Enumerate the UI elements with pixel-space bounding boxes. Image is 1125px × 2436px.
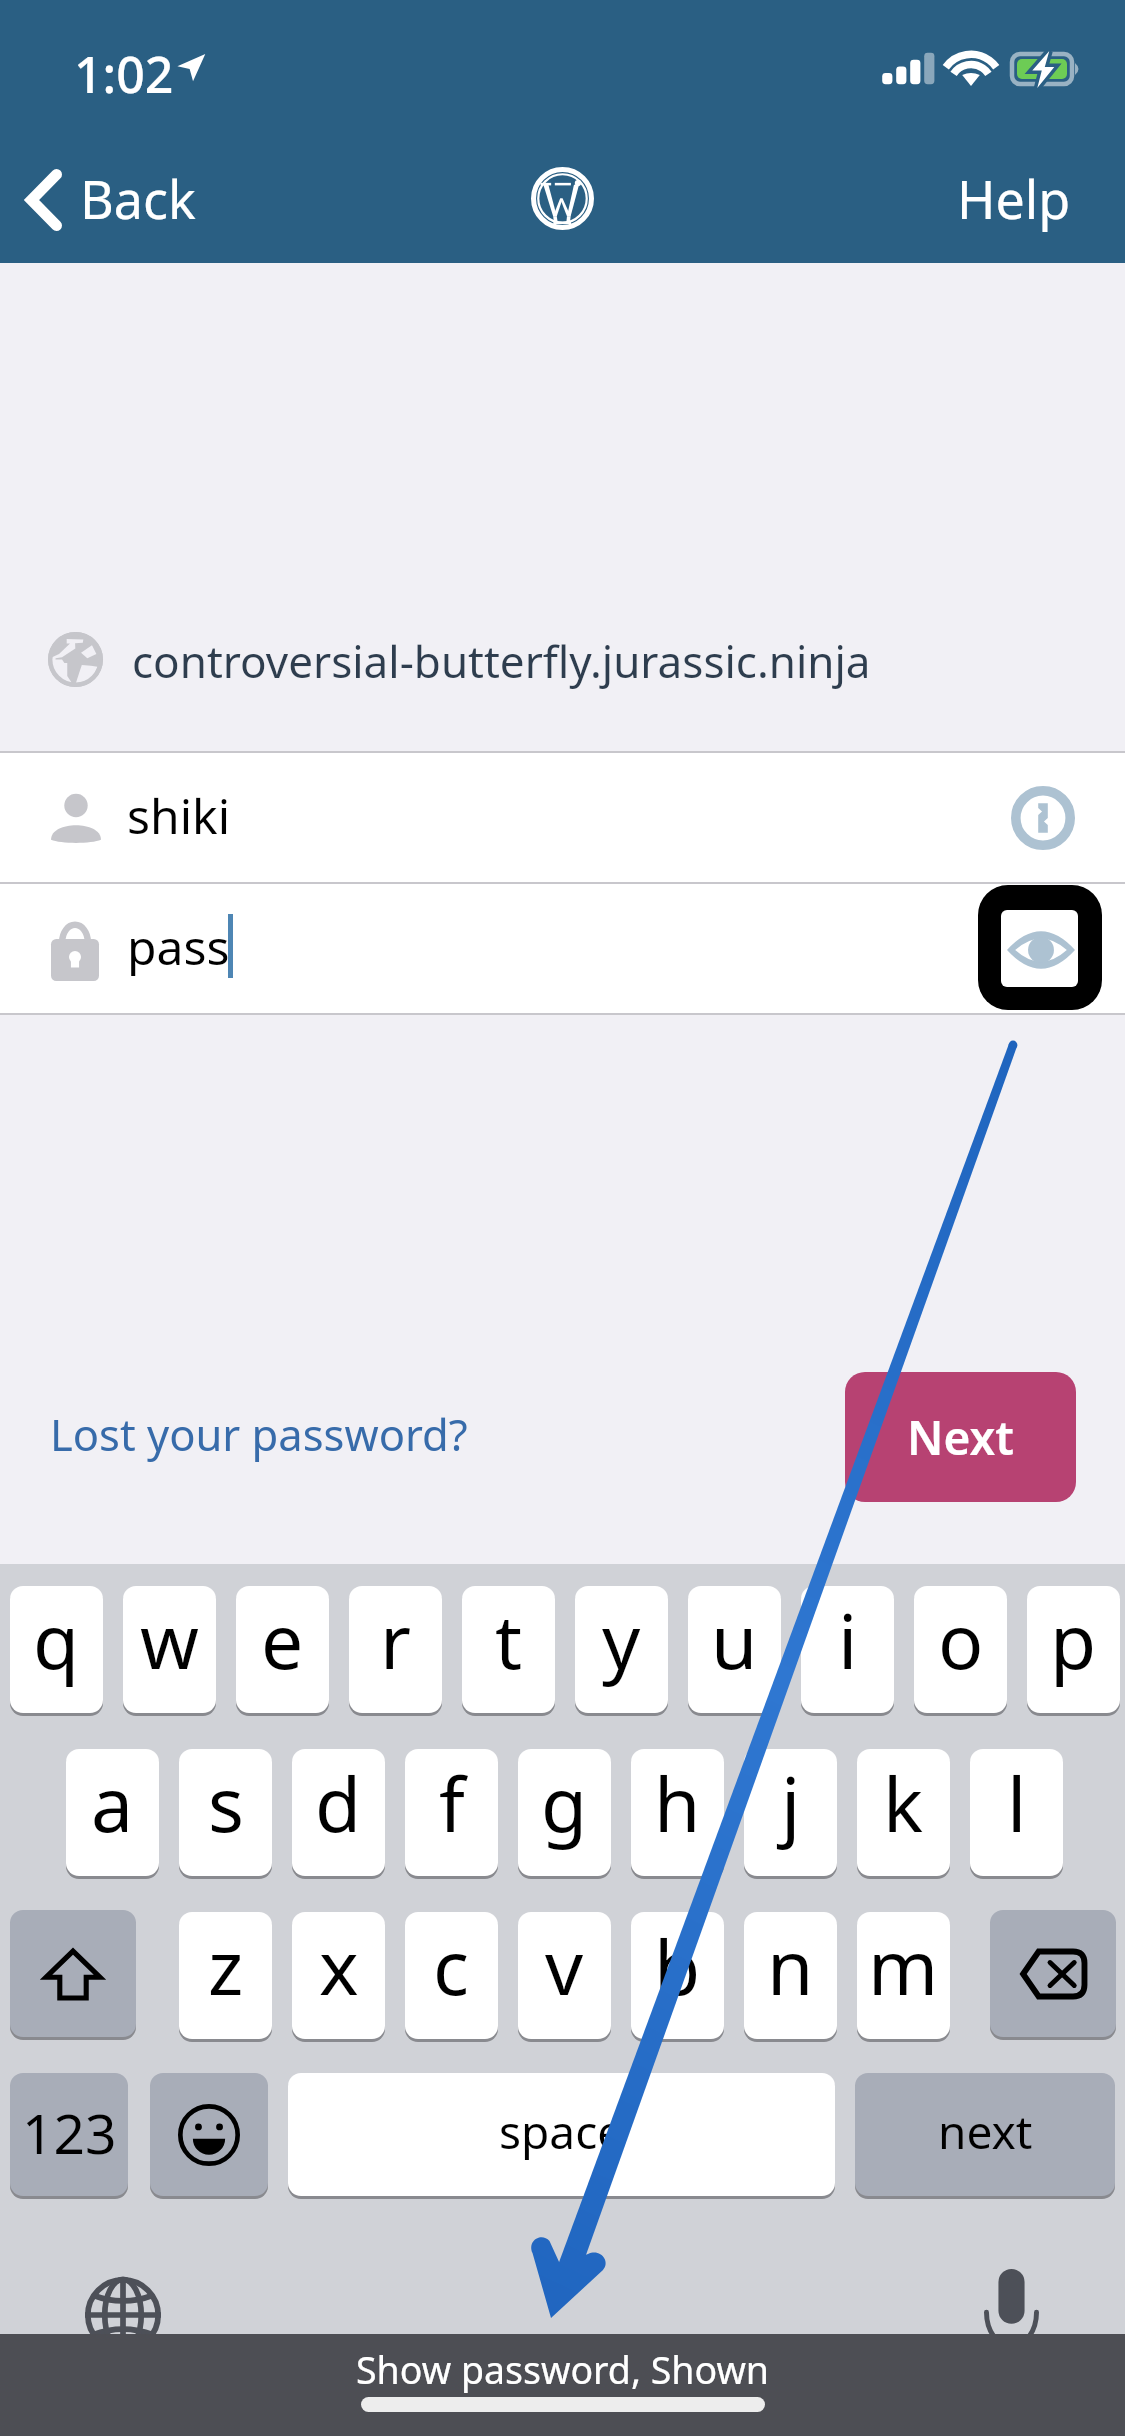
staticText: k [883, 1752, 924, 1854]
staticText: Lost your password? [50, 1404, 468, 1463]
button[interactable]: u [688, 1586, 781, 1713]
button[interactable]: l [970, 1749, 1063, 1876]
staticText: a [91, 1752, 134, 1854]
staticText: next [938, 2100, 1033, 2163]
button[interactable]: i [801, 1586, 894, 1713]
button[interactable]: p [1027, 1586, 1120, 1713]
button[interactable]: q [10, 1586, 103, 1713]
staticText: y [602, 1589, 641, 1691]
staticText: u [711, 1589, 758, 1691]
staticText: w [140, 1589, 199, 1691]
button[interactable]: z [179, 1912, 272, 2039]
button[interactable]: r [349, 1586, 442, 1713]
staticText: pass [127, 914, 230, 979]
staticText: q [33, 1589, 80, 1691]
button[interactable]: x [292, 1912, 385, 2039]
staticText: c [433, 1915, 470, 2017]
button[interactable]: t [462, 1586, 555, 1713]
staticText: d [315, 1752, 362, 1854]
staticText: h [654, 1752, 701, 1854]
staticText: l [1007, 1752, 1027, 1854]
button[interactable]: d [292, 1749, 385, 1876]
button[interactable]: 1Password [1000, 786, 1086, 850]
button[interactable]: c [405, 1912, 498, 2039]
button[interactable]: s [179, 1749, 272, 1876]
button[interactable]: Back [0, 148, 240, 252]
button[interactable]: Show password [978, 885, 1102, 1010]
staticText: controversial-butterfly.jurassic.ninja [132, 631, 871, 691]
button[interactable]: Switch keyboard [85, 2277, 161, 2353]
button[interactable]: j [744, 1749, 837, 1876]
button[interactable]: space [288, 2073, 835, 2196]
staticText: j [781, 1752, 801, 1854]
staticText: Back [80, 163, 196, 234]
button[interactable]: g [518, 1749, 611, 1876]
staticText: t [495, 1589, 523, 1691]
staticText: f [439, 1752, 465, 1854]
button[interactable]: n [744, 1912, 837, 2039]
button[interactable]: Help [920, 148, 1095, 252]
staticText: b [654, 1915, 701, 2017]
staticText: v [545, 1915, 584, 2017]
button[interactable]: Emoji [150, 2073, 268, 2196]
button[interactable]: pass [0, 884, 1125, 1013]
staticText: r [380, 1589, 411, 1691]
staticText: m [868, 1915, 939, 2017]
button[interactable]: Next [845, 1372, 1076, 1502]
button[interactable]: o [914, 1586, 1007, 1713]
button[interactable]: Lost your password? [50, 1404, 468, 1463]
staticText: s [208, 1752, 244, 1854]
button[interactable]: h [631, 1749, 724, 1876]
button[interactable]: next [855, 2073, 1115, 2196]
staticText: x [319, 1915, 359, 2017]
button[interactable]: Dictate [984, 2269, 1039, 2345]
button[interactable]: m [857, 1912, 950, 2039]
button[interactable]: 123 [10, 2073, 128, 2196]
staticText: g [541, 1752, 588, 1854]
button[interactable]: a [66, 1749, 159, 1876]
staticText: space [499, 2100, 624, 2163]
staticText: z [208, 1915, 244, 2017]
button[interactable]: f [405, 1749, 498, 1876]
button[interactable]: e [236, 1586, 329, 1713]
button[interactable]: k [857, 1749, 950, 1876]
staticText: Next [907, 1406, 1014, 1469]
button[interactable]: w [123, 1586, 216, 1713]
staticText: 123 [22, 2095, 117, 2170]
staticText: e [261, 1589, 304, 1691]
button[interactable]: y [575, 1586, 668, 1713]
staticText: Help [957, 163, 1071, 234]
button[interactable]: v [518, 1912, 611, 2039]
staticText: shiki [127, 783, 231, 848]
staticText: 1:02 [74, 40, 174, 108]
button[interactable]: b [631, 1912, 724, 2039]
staticText: o [938, 1589, 984, 1691]
button[interactable]: Backspace [990, 1910, 1116, 2037]
staticText: p [1050, 1589, 1097, 1691]
button[interactable]: shiki [0, 753, 1125, 882]
staticText: i [838, 1589, 858, 1691]
staticText: Show password, Shown [0, 2344, 1125, 2395]
staticText: n [767, 1915, 814, 2017]
button[interactable]: Shift [10, 1910, 136, 2037]
